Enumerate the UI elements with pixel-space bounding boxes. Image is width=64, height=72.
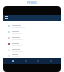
- button[interactable]: [3, 41, 61, 47]
- button[interactable]: [3, 29, 61, 35]
- button[interactable]: Menu: [5, 16, 9, 20]
- button[interactable]: [3, 47, 61, 53]
- button[interactable]: [3, 23, 61, 29]
- button[interactable]: [3, 35, 61, 41]
- button[interactable]: Tab 1: [23, 58, 29, 64]
- button[interactable]: Tab 2: [35, 58, 41, 64]
- staticText: PERKS: [27, 1, 37, 5]
- button[interactable]: Tab 3: [48, 58, 54, 64]
- button[interactable]: [3, 53, 61, 58]
- button[interactable]: Tab 0: [10, 58, 16, 64]
